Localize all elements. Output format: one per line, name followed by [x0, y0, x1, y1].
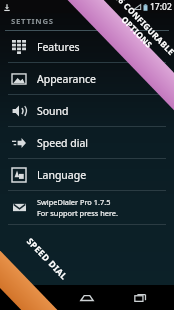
staticText: For support press here.	[37, 208, 119, 218]
staticText: SETTINGS	[11, 16, 54, 27]
staticText: OPTIONS	[119, 14, 155, 50]
staticText: Features	[37, 40, 80, 54]
button[interactable]: Sound	[0, 95, 174, 126]
button[interactable]: Language	[0, 159, 174, 190]
staticText: Speed dial	[37, 136, 89, 150]
staticText: Sound	[37, 104, 69, 118]
button[interactable]: Back	[14, 285, 54, 310]
staticText: Language	[37, 168, 87, 182]
button[interactable]: Home	[67, 285, 107, 310]
button[interactable]: Recents	[121, 285, 161, 310]
staticText: SPEED DIAL	[24, 235, 70, 283]
staticText: 17:02	[150, 1, 172, 13]
button[interactable]: Speed dial	[0, 127, 174, 158]
button[interactable]: Features	[0, 31, 174, 62]
staticText: SwipeDialer Pro 1.7.5	[37, 197, 111, 207]
staticText: 46 CONFIGURABLE	[112, 0, 174, 57]
button[interactable]: Appearance	[0, 63, 174, 94]
staticText: Appearance	[37, 72, 96, 86]
button[interactable]: SwipeDialer Pro 1.7.5	[0, 191, 174, 224]
